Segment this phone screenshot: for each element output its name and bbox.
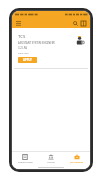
button[interactable]: Job Updates [64, 152, 90, 165]
other: Company logo [74, 35, 85, 46]
staticText: 3.2 LPA [18, 46, 27, 50]
button[interactable]: More options [80, 20, 87, 27]
staticText: APPLY [23, 58, 32, 62]
staticText: Content Feed [18, 161, 33, 164]
staticText: TCS [18, 34, 26, 40]
staticText: Alumni [47, 161, 55, 164]
button[interactable]: Search [72, 20, 79, 27]
button[interactable]: TCS [14, 31, 88, 66]
button[interactable]: APPLY [18, 57, 37, 63]
button[interactable]: Alumni [38, 152, 64, 165]
button[interactable]: Open navigation menu [15, 20, 22, 27]
staticText: ASSISTANT SYSTEM ENGINEER [18, 41, 55, 45]
button[interactable]: Content Feed [12, 152, 38, 165]
staticText: Daily ago [18, 51, 29, 54]
staticText: Job Updates [70, 161, 84, 164]
